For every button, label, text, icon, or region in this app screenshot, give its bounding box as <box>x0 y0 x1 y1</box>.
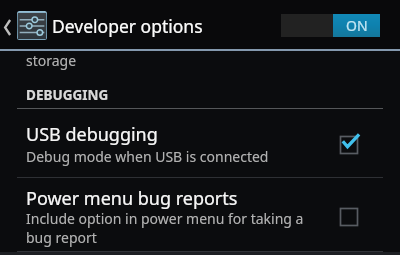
button[interactable] <box>0 109 400 177</box>
staticText: ON <box>346 16 368 35</box>
staticText: USB debugging <box>26 122 158 147</box>
staticText: Power menu bug reports <box>26 186 238 211</box>
button[interactable] <box>0 50 400 86</box>
staticText: DEBUGGING <box>26 86 109 104</box>
button[interactable]: Developer options, on <box>281 14 380 37</box>
staticText: Debug mode when USB is connected <box>26 147 269 166</box>
button[interactable]: Off <box>336 204 362 230</box>
staticText: storage <box>26 51 77 70</box>
staticText: Include option in power menu for taking … <box>26 209 304 247</box>
staticText: Developer options <box>52 14 203 38</box>
button[interactable]: Navigate up <box>0 0 47 48</box>
button[interactable]: On <box>336 132 362 158</box>
button[interactable] <box>0 177 400 251</box>
